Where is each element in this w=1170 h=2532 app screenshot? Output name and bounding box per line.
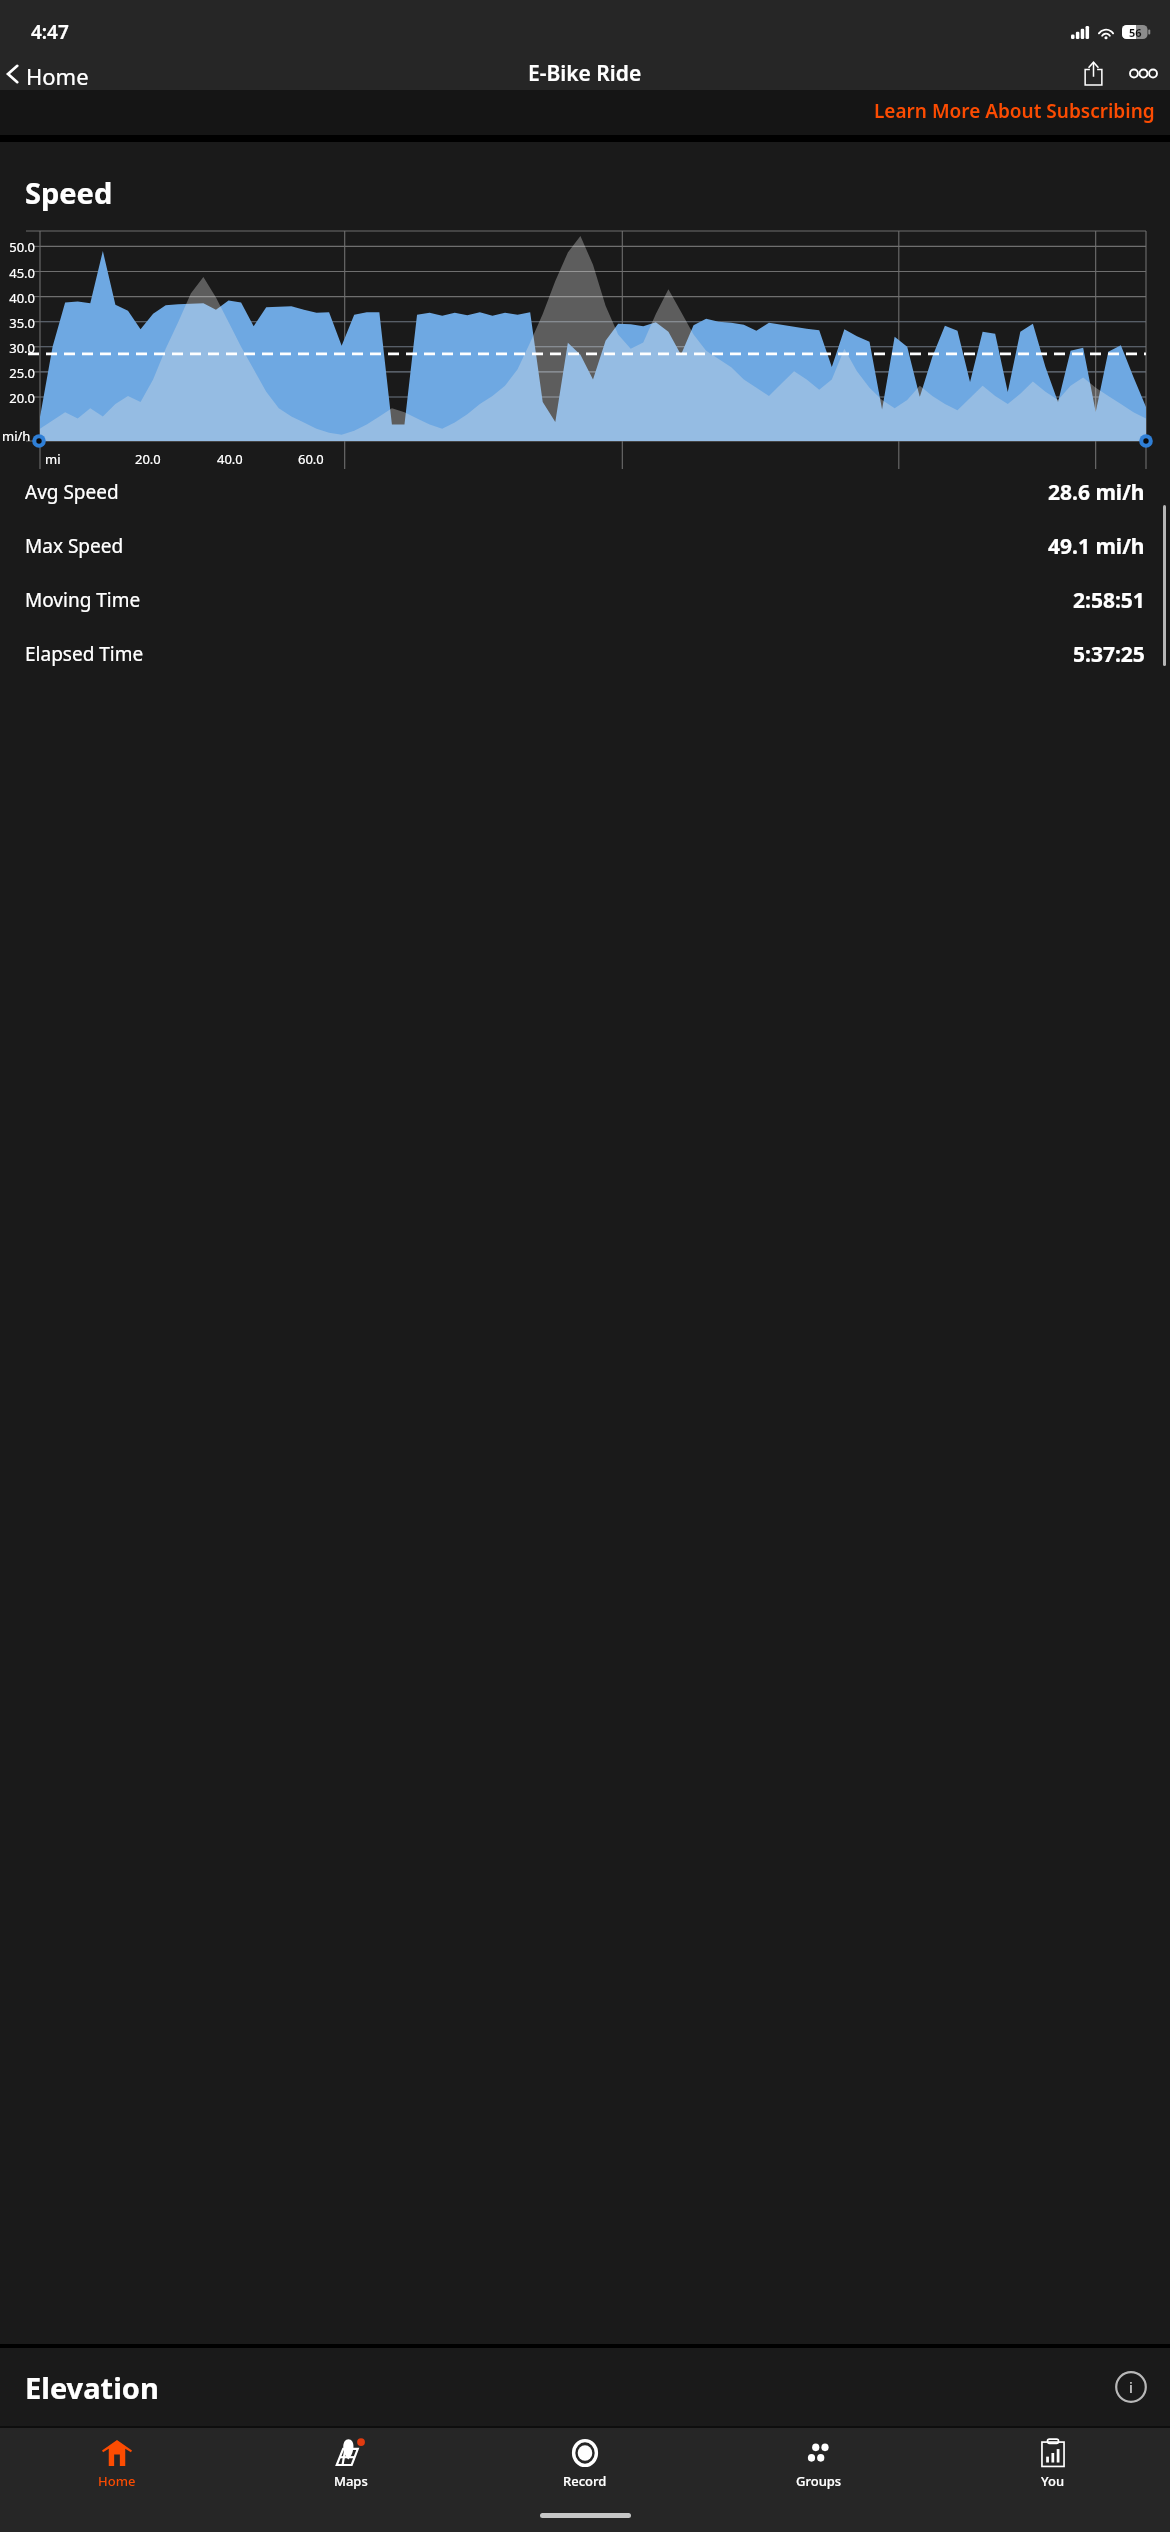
staticText: Groups xyxy=(796,2472,842,2490)
staticText: 5:37:25 xyxy=(1073,640,1145,669)
button[interactable]: Moving Time xyxy=(0,573,1170,627)
button[interactable]: More options xyxy=(1116,57,1170,90)
staticText: 28.6 mi/h xyxy=(1048,478,1145,507)
staticText: E-Bike Ride xyxy=(528,59,642,88)
button[interactable]: Info xyxy=(1110,2366,1152,2408)
staticText: 35.0 xyxy=(0,314,35,332)
staticText: Speed xyxy=(25,173,113,212)
staticText: Max Speed xyxy=(25,533,124,559)
staticText: Moving Time xyxy=(25,587,141,613)
staticText: Maps xyxy=(334,2472,368,2490)
button[interactable]: Home xyxy=(0,57,99,90)
button[interactable]: Home xyxy=(0,2428,234,2504)
button[interactable]: Record xyxy=(468,2428,702,2504)
staticText: 2:58:51 xyxy=(1073,586,1145,615)
staticText: Home xyxy=(26,61,89,86)
button[interactable]: Avg Speed xyxy=(0,465,1170,519)
staticText: i xyxy=(1129,2377,1133,2397)
staticText: 50.0 xyxy=(0,238,35,256)
staticText: Avg Speed xyxy=(25,479,119,505)
staticText: 40.0 xyxy=(217,450,243,468)
staticText: 30.0 xyxy=(0,339,35,357)
staticText: Elevation xyxy=(25,2368,159,2407)
staticText: 40.0 xyxy=(0,289,35,307)
staticText: Elapsed Time xyxy=(25,641,144,667)
button[interactable]: Max Speed xyxy=(0,519,1170,573)
staticText: You xyxy=(1041,2472,1065,2490)
staticText: 49.1 mi/h xyxy=(1048,532,1145,561)
staticText: Home xyxy=(98,2472,136,2490)
staticText: 4:47 xyxy=(31,19,69,45)
staticText: Record xyxy=(563,2472,607,2490)
staticText: 20.0 xyxy=(0,389,35,407)
staticText: 45.0 xyxy=(0,264,35,282)
staticText: 20.0 xyxy=(135,450,161,468)
staticText: mi/h xyxy=(2,427,31,445)
staticText: 60.0 xyxy=(298,450,324,468)
staticText: 25.0 xyxy=(0,364,35,382)
button[interactable]: Learn More About Subscribing xyxy=(874,98,1155,124)
button[interactable]: Elapsed Time xyxy=(0,627,1170,681)
button[interactable]: Maps xyxy=(234,2428,468,2504)
staticText: 56 xyxy=(1129,25,1142,39)
staticText: mi xyxy=(45,450,61,468)
button[interactable]: Groups xyxy=(702,2428,936,2504)
button[interactable]: Share xyxy=(1070,57,1116,90)
button[interactable]: You xyxy=(936,2428,1170,2504)
